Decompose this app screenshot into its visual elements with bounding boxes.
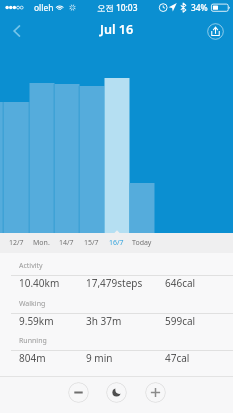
- staticText: Walking: [19, 299, 46, 309]
- button[interactable]: 12/7: [4, 233, 29, 253]
- staticText: 804m: [19, 351, 46, 365]
- staticText: Mon.: [33, 238, 50, 248]
- button[interactable]: Today: [129, 233, 154, 253]
- button[interactable]: 15/7: [79, 233, 104, 253]
- button[interactable]: Back: [0, 16, 34, 46]
- staticText: 10.40km: [19, 276, 60, 290]
- button[interactable]: Share: [201, 17, 229, 45]
- staticText: Jul 16: [100, 21, 134, 38]
- staticText: Today: [132, 238, 152, 248]
- staticText: 47cal: [165, 351, 190, 365]
- staticText: 3h 37m: [86, 314, 122, 328]
- button[interactable]: 16/7: [104, 233, 129, 253]
- staticText: 9.59km: [19, 314, 54, 328]
- staticText: 17,479steps: [86, 276, 143, 290]
- button[interactable]: Mon.: [29, 233, 54, 253]
- staticText: Running: [19, 336, 47, 346]
- staticText: 오전 10:03: [97, 2, 138, 13]
- button[interactable]: Decrease: [68, 382, 89, 403]
- button[interactable]: 9.59km: [0, 313, 233, 328]
- staticText: 16/7: [109, 238, 124, 248]
- staticText: 599cal: [165, 314, 196, 328]
- staticText: 646cal: [165, 276, 196, 290]
- staticText: 9 min: [86, 351, 113, 365]
- staticText: 14/7: [59, 238, 74, 248]
- button[interactable]: 14/7: [54, 233, 79, 253]
- staticText: 15/7: [84, 238, 99, 248]
- button[interactable]: Sleep mode: [106, 382, 127, 403]
- staticText: Activity: [19, 261, 43, 271]
- staticText: 34%: [191, 2, 208, 13]
- button[interactable]: Add: [145, 382, 166, 403]
- button[interactable]: 804m: [0, 350, 233, 365]
- staticText: 12/7: [9, 238, 24, 248]
- button[interactable]: 10.40km: [0, 275, 233, 290]
- staticText: olleh: [34, 2, 54, 13]
